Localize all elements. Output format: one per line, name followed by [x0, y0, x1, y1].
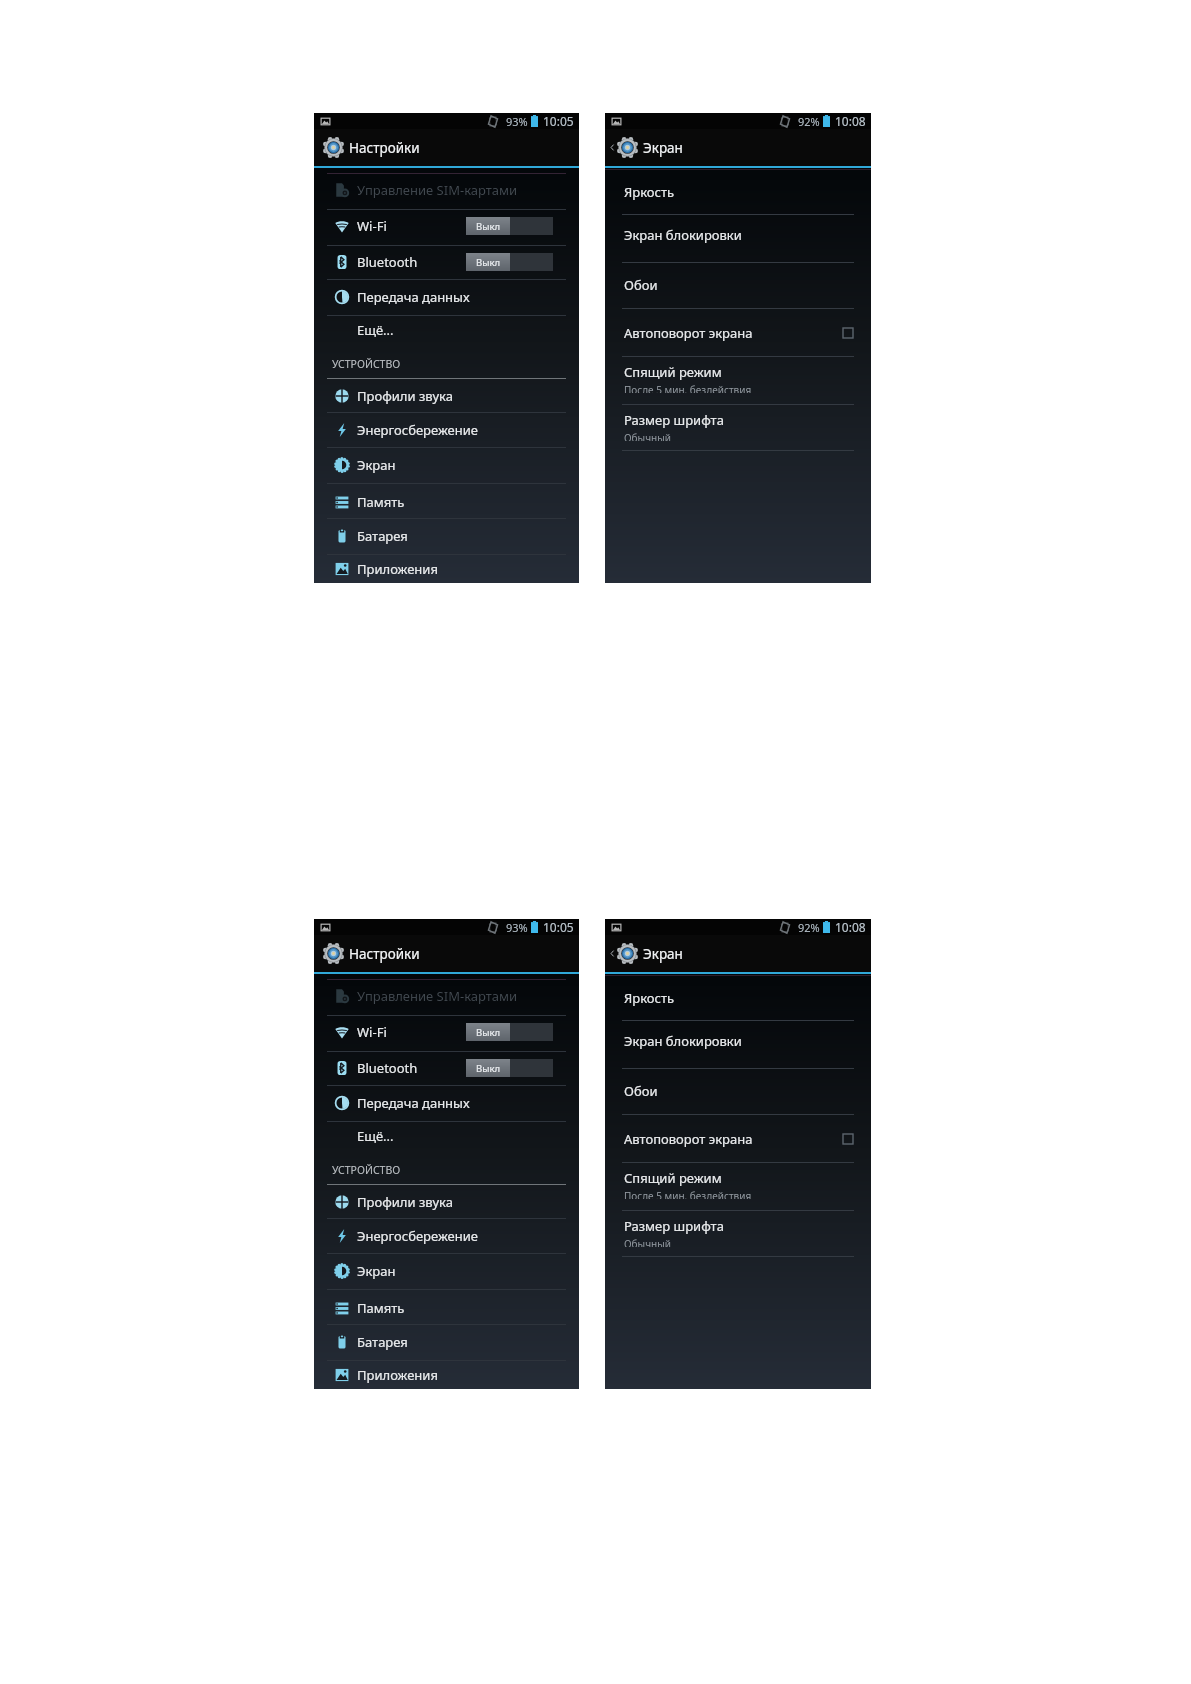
button[interactable]: Выкл — [466, 217, 553, 235]
staticText: 10:05 — [543, 919, 574, 935]
other: Screenshot notification — [320, 116, 331, 127]
button[interactable]: Профили звука — [314, 379, 579, 412]
staticText: Батарея — [357, 527, 408, 545]
staticText: Обои — [624, 276, 658, 294]
staticText: Ещё... — [357, 321, 394, 339]
staticText: Настройки — [349, 945, 420, 963]
button[interactable]: Bluetooth — [314, 1051, 579, 1084]
staticText: 92% — [798, 114, 820, 129]
staticText: Выкл — [476, 220, 501, 233]
button[interactable]: Bluetooth — [314, 245, 579, 278]
button[interactable]: Ещё... — [314, 1119, 579, 1152]
button[interactable]: Ещё... — [314, 313, 579, 346]
staticText: Размер шрифта — [624, 1217, 724, 1235]
staticText: Экран — [643, 945, 683, 963]
staticText: УСТРОЙСТВО — [332, 357, 401, 371]
staticText: Автоповорот экрана — [624, 324, 753, 342]
staticText: Профили звука — [357, 1193, 453, 1211]
button[interactable]: Размер шрифта — [605, 1217, 871, 1247]
staticText: Обои — [624, 1082, 658, 1100]
button[interactable]: Профили звука — [314, 1185, 579, 1218]
button[interactable]: Управление SIM-картами — [314, 173, 579, 206]
staticText: Экран блокировки — [624, 226, 742, 244]
staticText: УСТРОЙСТВО — [332, 1163, 401, 1177]
staticText: Bluetooth — [357, 253, 418, 271]
button[interactable]: Выкл — [466, 1059, 553, 1077]
staticText: Профили звука — [357, 387, 453, 405]
staticText: Экран блокировки — [624, 1032, 742, 1050]
staticText: Приложения — [357, 560, 438, 578]
other: Auto-rotate — [487, 921, 499, 934]
staticText: Экран — [357, 456, 396, 474]
staticText: Спящий режим — [624, 1169, 722, 1187]
button[interactable]: Яркость — [605, 987, 871, 1009]
button[interactable]: Экран блокировки — [605, 1030, 871, 1052]
staticText: Управление SIM-картами — [357, 987, 518, 1005]
staticText: Wi-Fi — [357, 1023, 387, 1041]
staticText: После 5 мин. бездействия — [624, 383, 752, 393]
staticText: 92% — [798, 920, 820, 935]
button[interactable]: Передача данных — [314, 1086, 579, 1119]
other: Auto-rotate — [779, 115, 791, 128]
button[interactable]: Память — [314, 485, 579, 518]
button[interactable]: Экран блокировки — [605, 224, 871, 246]
button[interactable]: Настройки — [314, 935, 428, 972]
button[interactable]: Настройки — [314, 129, 428, 166]
other: Screenshot notification — [611, 116, 622, 127]
button[interactable]: Батарея — [314, 519, 579, 552]
button[interactable]: Яркость — [605, 181, 871, 203]
staticText: Обычный — [624, 1237, 671, 1247]
button[interactable]: Спящий режим — [605, 1169, 871, 1199]
button[interactable]: Экран — [605, 129, 691, 166]
button[interactable]: Энергосбережение — [314, 413, 579, 446]
staticText: Экран — [643, 139, 683, 157]
staticText: Спящий режим — [624, 363, 722, 381]
button[interactable]: Память — [314, 1291, 579, 1324]
button[interactable]: Обои — [605, 1080, 871, 1102]
button[interactable]: Выкл — [466, 1023, 553, 1041]
staticText: Wi-Fi — [357, 217, 387, 235]
other: Auto-rotate — [779, 921, 791, 934]
button[interactable]: Энергосбережение — [314, 1219, 579, 1252]
staticText: Экран — [357, 1262, 396, 1280]
staticText: Настройки — [349, 139, 420, 157]
staticText: 10:05 — [543, 113, 574, 129]
staticText: 10:08 — [835, 113, 866, 129]
staticText: 10:08 — [835, 919, 866, 935]
button[interactable]: Экран — [314, 448, 579, 481]
staticText: Выкл — [476, 1062, 501, 1075]
staticText: Яркость — [624, 989, 675, 1007]
staticText: После 5 мин. бездействия — [624, 1189, 752, 1199]
staticText: Выкл — [476, 1026, 501, 1039]
button[interactable]: Обои — [605, 274, 871, 296]
button[interactable]: Приложения — [314, 552, 579, 585]
staticText: Автоповорот экрана — [624, 1130, 753, 1148]
button[interactable]: Батарея — [314, 1325, 579, 1358]
button[interactable]: Wi-Fi — [314, 1015, 579, 1048]
staticText: Выкл — [476, 256, 501, 269]
staticText: Энергосбережение — [357, 421, 478, 439]
staticText: 93% — [506, 920, 528, 935]
button[interactable]: Wi-Fi — [314, 209, 579, 242]
button[interactable]: Спящий режим — [605, 363, 871, 393]
other: Screenshot notification — [320, 922, 331, 933]
staticText: Обычный — [624, 431, 671, 441]
staticText: Яркость — [624, 183, 675, 201]
button[interactable]: Экран — [314, 1254, 579, 1287]
staticText: Bluetooth — [357, 1059, 418, 1077]
other: Screenshot notification — [611, 922, 622, 933]
button[interactable]: Автоповорот экрана — [605, 322, 871, 344]
staticText: Память — [357, 1299, 405, 1317]
staticText: Управление SIM-картами — [357, 181, 518, 199]
staticText: Передача данных — [357, 1094, 470, 1112]
button[interactable]: Передача данных — [314, 280, 579, 313]
button[interactable]: Приложения — [314, 1358, 579, 1391]
button[interactable]: Размер шрифта — [605, 411, 871, 441]
staticText: Ещё... — [357, 1127, 394, 1145]
other: Auto-rotate — [487, 115, 499, 128]
button[interactable]: Автоповорот экрана — [605, 1128, 871, 1150]
button[interactable]: Выкл — [466, 253, 553, 271]
button[interactable]: Управление SIM-картами — [314, 979, 579, 1012]
staticText: Память — [357, 493, 405, 511]
button[interactable]: Экран — [605, 935, 691, 972]
